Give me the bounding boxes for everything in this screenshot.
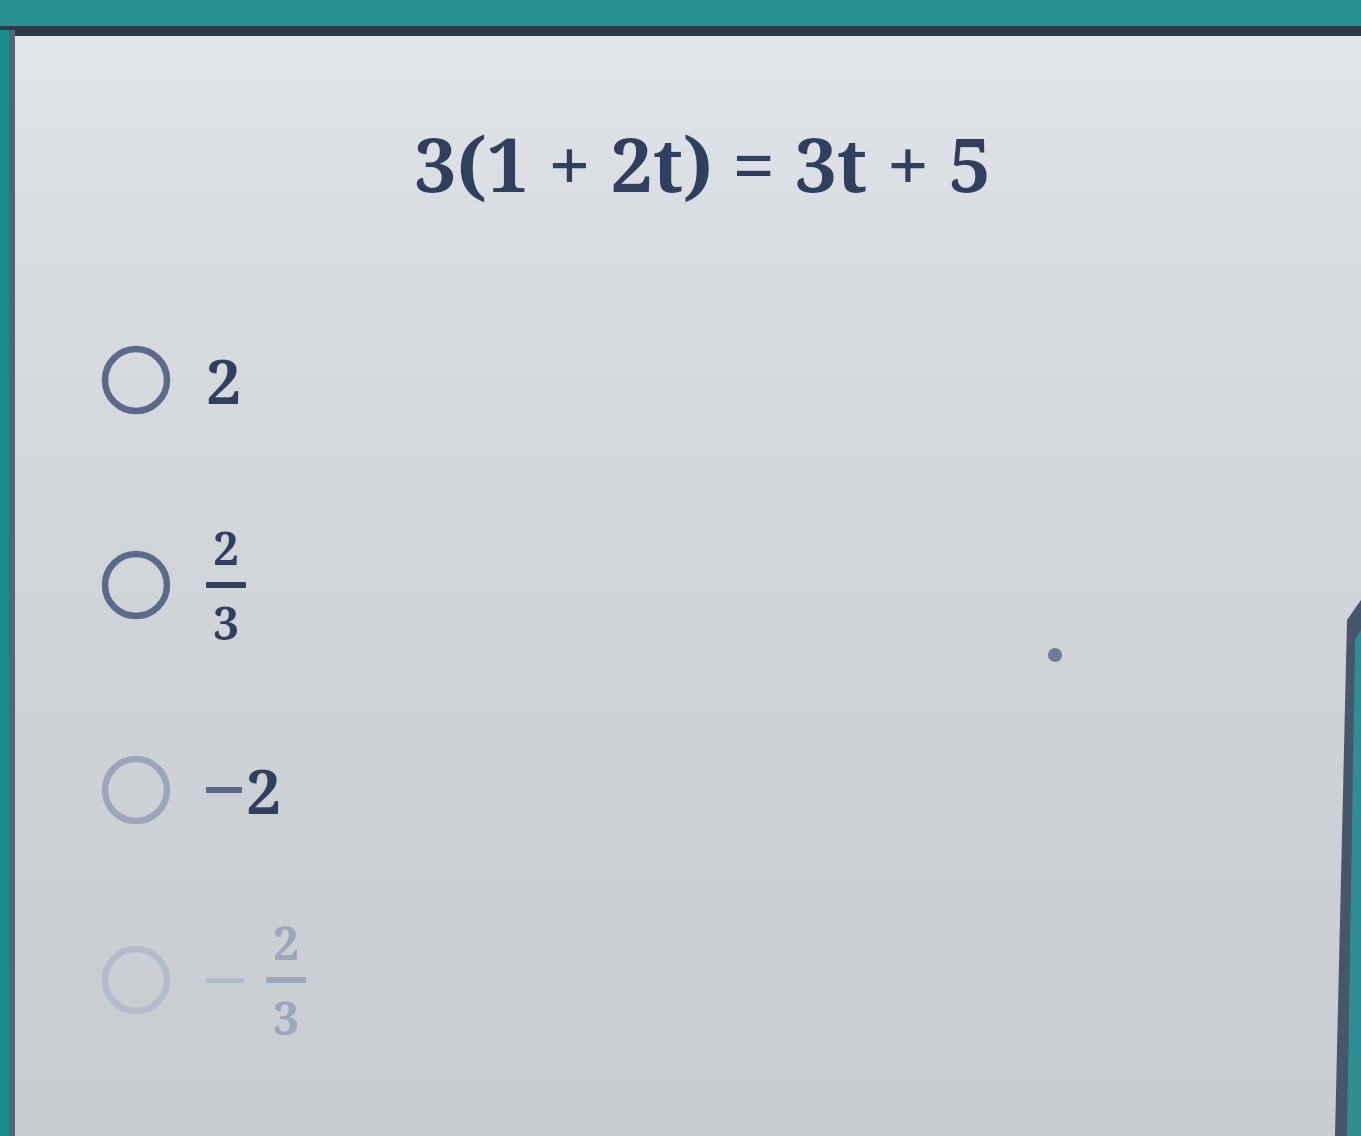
- staticText: 2: [246, 748, 282, 832]
- staticText: 3: [213, 591, 239, 654]
- staticText: 2: [206, 338, 242, 422]
- staticText: 3(1 + 2t) = 3t + 5: [414, 112, 991, 214]
- button[interactable]: Option negative 2: [100, 720, 440, 860]
- button[interactable]: Option 2: [100, 310, 440, 450]
- staticText: 3: [273, 986, 299, 1049]
- button[interactable]: Option negative two thirds: [100, 910, 440, 1050]
- button[interactable]: Option two thirds: [100, 515, 440, 655]
- staticText: 2: [273, 911, 299, 974]
- staticText: 2: [213, 516, 239, 579]
